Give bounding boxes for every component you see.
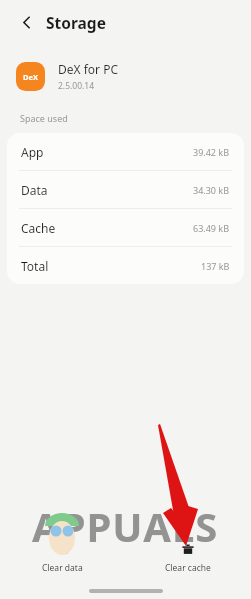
button[interactable]: Total bbox=[7, 246, 244, 284]
staticText: 2.5.00.14 bbox=[58, 80, 95, 92]
staticText: DeX for PC bbox=[58, 61, 118, 77]
staticText: Storage bbox=[46, 12, 106, 33]
staticText: 137 kB bbox=[201, 260, 230, 272]
button[interactable]: Clear cache bbox=[125, 533, 251, 583]
button[interactable]: Data bbox=[7, 170, 244, 208]
staticText: Total bbox=[21, 258, 49, 274]
staticText: DeX bbox=[23, 72, 38, 82]
staticText: Cache bbox=[21, 220, 56, 236]
staticText: 63.49 kB bbox=[193, 222, 230, 234]
staticText: Clear cache bbox=[165, 562, 211, 574]
staticText: Space used bbox=[20, 112, 68, 124]
staticText: 39.42 kB bbox=[193, 146, 230, 158]
button[interactable]: Cache bbox=[7, 208, 244, 246]
staticText: App bbox=[21, 144, 44, 160]
staticText: APPUALS bbox=[32, 499, 219, 553]
button[interactable]: Clear data bbox=[0, 533, 125, 583]
staticText: 34.30 kB bbox=[193, 184, 230, 196]
button[interactable]: Back bbox=[13, 9, 39, 35]
staticText: Data bbox=[21, 182, 48, 198]
staticText: Clear data bbox=[42, 562, 83, 574]
button[interactable]: App bbox=[7, 133, 244, 170]
